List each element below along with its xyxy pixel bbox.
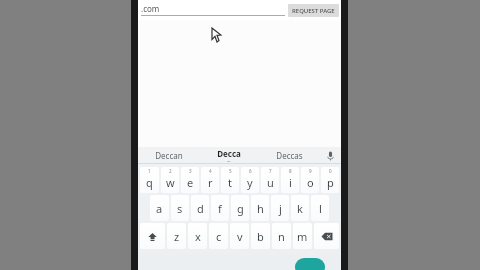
staticText: w bbox=[166, 175, 175, 190]
staticText: 6 bbox=[249, 168, 252, 174]
button[interactable]: 7 bbox=[261, 167, 279, 193]
staticText: 4 bbox=[209, 168, 212, 174]
staticText: d bbox=[197, 201, 204, 216]
staticText: p bbox=[327, 175, 334, 190]
button[interactable]: s bbox=[171, 195, 189, 221]
button[interactable]: Backspace bbox=[314, 223, 339, 249]
button[interactable]: f bbox=[211, 195, 229, 221]
button[interactable]: .com bbox=[141, 0, 285, 20]
staticText: 9 bbox=[309, 168, 312, 174]
staticText: n bbox=[278, 229, 285, 244]
button[interactable]: 5 bbox=[221, 167, 239, 193]
button[interactable]: 3 bbox=[181, 167, 199, 193]
button[interactable]: Enter bbox=[295, 258, 325, 270]
staticText: b bbox=[257, 229, 264, 244]
staticText: .com bbox=[141, 3, 160, 14]
button[interactable]: x bbox=[188, 223, 207, 249]
button[interactable]: c bbox=[209, 223, 228, 249]
staticText: z bbox=[174, 229, 180, 244]
button[interactable]: d bbox=[191, 195, 209, 221]
staticText: 7 bbox=[269, 168, 272, 174]
staticText: e bbox=[187, 175, 194, 190]
staticText: t bbox=[228, 175, 232, 190]
button[interactable]: 2 bbox=[161, 167, 179, 193]
staticText: k bbox=[297, 201, 303, 216]
staticText: g bbox=[237, 201, 244, 216]
button[interactable]: 8 bbox=[281, 167, 299, 193]
staticText: 0 bbox=[329, 168, 332, 174]
button[interactable]: n bbox=[272, 223, 291, 249]
staticText: o bbox=[307, 175, 314, 190]
staticText: Decca bbox=[217, 148, 241, 159]
button[interactable]: j bbox=[271, 195, 289, 221]
button[interactable]: g bbox=[231, 195, 249, 221]
staticText: v bbox=[237, 229, 243, 244]
button[interactable]: z bbox=[167, 223, 186, 249]
staticText: y bbox=[247, 175, 253, 190]
button[interactable]: k bbox=[291, 195, 309, 221]
button[interactable]: 6 bbox=[241, 167, 259, 193]
button[interactable]: Voice input bbox=[319, 147, 341, 164]
staticText: r bbox=[208, 175, 213, 190]
button[interactable]: Deccan bbox=[138, 147, 199, 164]
staticText: s bbox=[177, 201, 183, 216]
button[interactable]: Shift bbox=[140, 223, 165, 249]
staticText: 1 bbox=[148, 168, 151, 174]
staticText: 3 bbox=[189, 168, 192, 174]
staticText: j bbox=[279, 201, 282, 216]
staticText: a bbox=[156, 201, 163, 216]
staticText: 2 bbox=[169, 168, 172, 174]
staticText: c bbox=[216, 229, 222, 244]
staticText: m bbox=[297, 229, 308, 244]
button[interactable]: 9 bbox=[301, 167, 319, 193]
staticText: Deccan bbox=[155, 150, 183, 161]
staticText: Deccas bbox=[276, 150, 303, 161]
button[interactable]: m bbox=[293, 223, 312, 249]
staticText: x bbox=[195, 229, 201, 244]
button[interactable]: 0 bbox=[321, 167, 339, 193]
staticText: q bbox=[146, 175, 153, 190]
staticText: u bbox=[267, 175, 274, 190]
button[interactable]: v bbox=[230, 223, 249, 249]
button[interactable]: 1 bbox=[140, 167, 159, 193]
button[interactable]: REQUEST PAGE bbox=[288, 4, 339, 17]
staticText: REQUEST PAGE bbox=[292, 7, 335, 15]
staticText: f bbox=[218, 201, 222, 216]
staticText: h bbox=[257, 201, 264, 216]
button[interactable]: Decca bbox=[199, 147, 259, 164]
staticText: 8 bbox=[289, 168, 292, 174]
staticText: ••• bbox=[227, 160, 231, 164]
button[interactable]: l bbox=[311, 195, 329, 221]
button[interactable]: a bbox=[150, 195, 169, 221]
button[interactable]: h bbox=[251, 195, 269, 221]
button[interactable]: b bbox=[251, 223, 270, 249]
staticText: i bbox=[289, 175, 292, 190]
button[interactable]: Deccas bbox=[259, 147, 319, 164]
button[interactable]: 4 bbox=[201, 167, 219, 193]
staticText: l bbox=[319, 201, 322, 216]
staticText: 5 bbox=[229, 168, 232, 174]
